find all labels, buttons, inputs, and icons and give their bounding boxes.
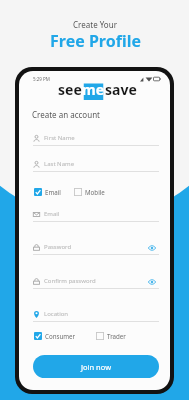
staticText: me (82, 80, 105, 99)
staticText: Join now (81, 362, 112, 372)
staticText: Confirm password (44, 277, 96, 285)
button[interactable]: Show password (148, 244, 156, 252)
button[interactable]: Email (34, 188, 61, 196)
staticText: Mobile (85, 188, 105, 196)
button[interactable]: First Name (33, 130, 159, 145)
staticText: Free Profile (50, 30, 141, 52)
button[interactable]: Join now (33, 355, 159, 378)
button[interactable]: Location (33, 306, 159, 321)
staticText: Trader (107, 332, 126, 340)
button[interactable]: Confirm password (33, 273, 159, 288)
staticText: save (105, 80, 137, 99)
staticText: see (58, 80, 82, 99)
staticText: 5:29 PM (33, 76, 50, 82)
staticText: Consumer (45, 332, 76, 340)
staticText: Last Name (44, 160, 75, 168)
button[interactable]: Last Name (33, 156, 159, 171)
staticText: Create Your (73, 19, 117, 30)
staticText: Email (45, 188, 61, 196)
staticText: Email (44, 210, 60, 218)
staticText: Create an account (32, 109, 100, 120)
staticText: Location (44, 310, 69, 318)
button[interactable]: Mobile (74, 188, 105, 196)
button[interactable]: Email (33, 206, 159, 221)
button[interactable]: Trader (96, 332, 126, 340)
button[interactable]: Consumer (34, 332, 76, 340)
staticText: First Name (44, 134, 75, 142)
button[interactable]: Password (33, 239, 159, 254)
staticText: Password (44, 243, 72, 251)
button[interactable]: Show password (148, 278, 156, 286)
